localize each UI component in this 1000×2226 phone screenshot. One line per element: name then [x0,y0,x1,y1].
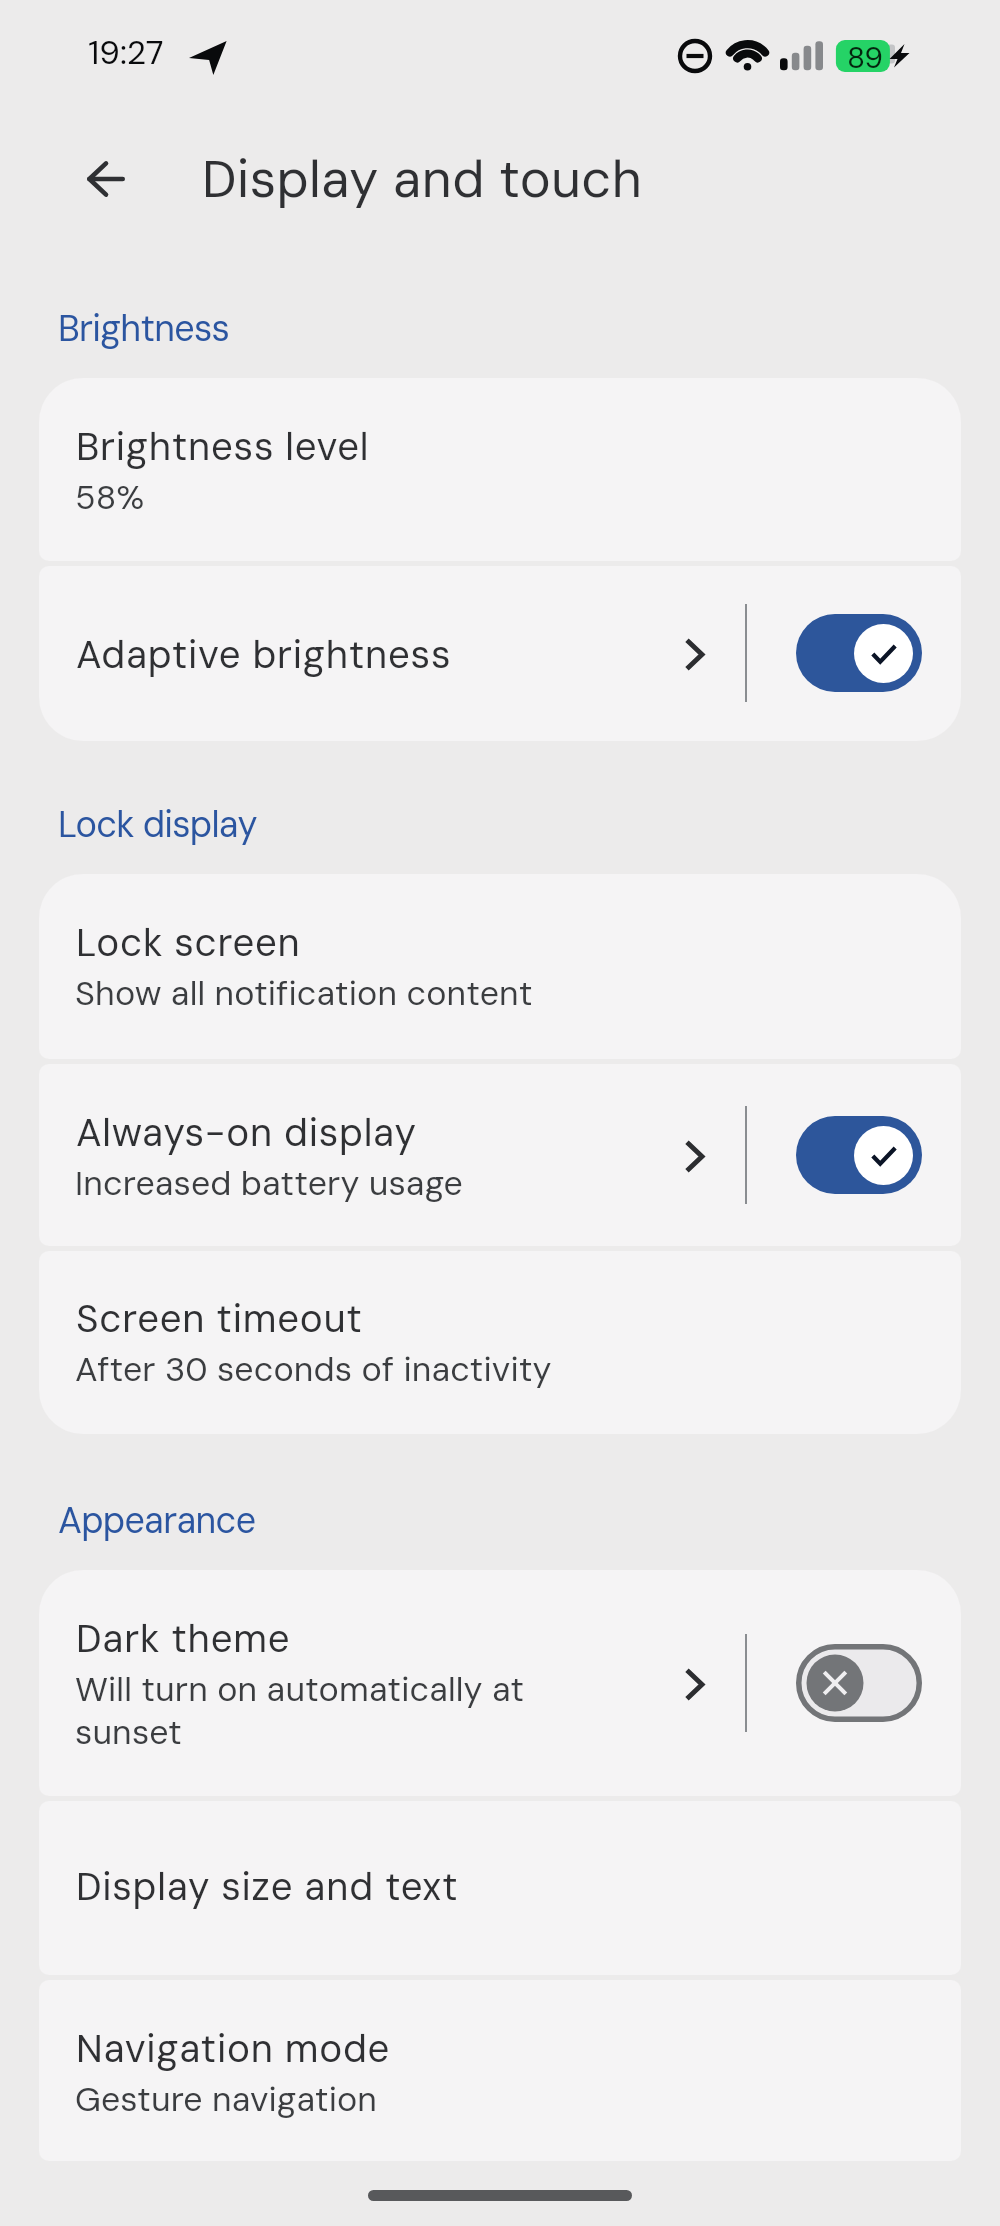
staticText: Show all notification content [75,972,533,1015]
staticText: 89 [847,38,883,77]
staticText: Display size and text [76,1863,459,1912]
staticText: Will turn on automatically at sunset [75,1668,555,1754]
button[interactable]: Open more settings [662,1628,726,1738]
staticText: Appearance [58,1497,256,1544]
button[interactable]: Toggle on [796,614,922,692]
staticText: Brightness level [76,423,370,472]
staticText: 19:27 [88,31,164,74]
staticText: Lock display [58,801,257,848]
button[interactable]: Display size and text [39,1801,961,1975]
staticText: Navigation mode [76,2025,391,2074]
staticText: Lock screen [76,919,301,968]
staticText: Screen timeout [76,1295,363,1344]
button[interactable]: Toggle on [796,1116,922,1194]
button[interactable]: Brightness level [39,378,961,561]
button[interactable]: Adaptive brightness [39,566,961,741]
staticText: After 30 seconds of inactivity [75,1348,552,1391]
button[interactable]: Lock screen [39,874,961,1059]
button[interactable]: Dark theme [39,1570,961,1796]
button[interactable]: Toggle off [796,1644,922,1722]
staticText: Display and touch [202,145,643,213]
staticText: Always-on display [76,1109,417,1158]
staticText: 58% [75,476,145,519]
button[interactable]: Navigation mode [39,1980,961,2161]
staticText: Adaptive brightness [76,631,452,680]
button[interactable]: Open more settings [662,1100,726,1210]
staticText: Gesture navigation [75,2078,378,2121]
staticText: Brightness [58,305,230,352]
button[interactable]: Screen timeout [39,1251,961,1434]
button[interactable]: Back [66,139,146,219]
button[interactable]: Always-on display [39,1064,961,1246]
staticText: Increased battery usage [75,1162,463,1205]
button[interactable]: Open more settings [662,598,726,708]
staticText: Dark theme [76,1615,291,1664]
